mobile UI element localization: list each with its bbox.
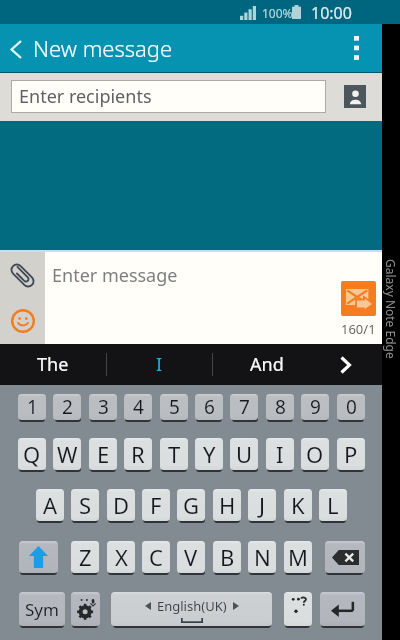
button[interactable]: T <box>160 438 188 470</box>
staticText: S <box>79 490 92 520</box>
button[interactable]: V <box>177 541 205 573</box>
staticText: Z <box>79 542 92 572</box>
staticText: G <box>183 490 200 520</box>
button[interactable]: G <box>177 489 205 521</box>
button[interactable]: 1 <box>18 394 46 420</box>
button[interactable]: Space <box>111 592 272 626</box>
button[interactable]: O <box>301 438 329 470</box>
button[interactable]: N <box>248 541 276 573</box>
button[interactable]: D <box>107 489 135 521</box>
staticText: I <box>156 352 163 377</box>
button[interactable]: E <box>89 438 117 470</box>
staticText: 160/1 <box>341 320 376 338</box>
button[interactable]: Add recipient from contacts <box>344 85 366 108</box>
staticText: P <box>344 439 358 469</box>
staticText: The <box>37 352 69 377</box>
staticText: E <box>97 439 110 469</box>
button[interactable]: K <box>284 489 312 521</box>
button[interactable]: 0 <box>337 394 365 420</box>
button[interactable]: 5 <box>160 394 188 420</box>
button[interactable]: And <box>213 344 321 385</box>
staticText: I <box>276 439 284 469</box>
staticText: Enter message <box>52 263 178 288</box>
button[interactable]: H <box>213 489 241 521</box>
button[interactable]: Keyboard settings <box>71 592 100 626</box>
button[interactable]: Navigate up <box>0 24 31 72</box>
button[interactable]: Sym <box>19 592 65 626</box>
button[interactable]: Enter <box>320 592 365 626</box>
button[interactable]: M <box>284 541 312 573</box>
button[interactable]: S <box>71 489 99 521</box>
button[interactable]: The <box>0 344 106 385</box>
button[interactable]: More suggestions <box>321 344 382 385</box>
staticText: Sym <box>25 598 59 621</box>
button[interactable]: Punctuation <box>284 592 312 626</box>
staticText: English(UK) <box>157 597 227 615</box>
staticText: And <box>250 352 284 377</box>
staticText: 2 <box>62 394 73 420</box>
button[interactable]: A <box>36 489 64 521</box>
button[interactable]: L <box>319 489 347 521</box>
button[interactable]: B <box>213 541 241 573</box>
staticText: L <box>327 490 339 520</box>
button[interactable]: Attach <box>0 252 45 298</box>
staticText: 9 <box>310 394 321 420</box>
button[interactable]: 9 <box>301 394 329 420</box>
button[interactable]: R <box>124 438 152 470</box>
button[interactable]: W <box>53 438 81 470</box>
staticText: X <box>115 542 128 572</box>
staticText: W <box>57 439 78 469</box>
staticText: R <box>131 439 145 469</box>
button[interactable]: Shift <box>19 541 58 573</box>
staticText: Q <box>23 439 41 469</box>
button[interactable]: Insert emoticon <box>0 298 45 344</box>
staticText: 5 <box>169 394 180 420</box>
button[interactable]: 3 <box>89 394 117 420</box>
staticText: U <box>236 439 253 469</box>
staticText: B <box>220 542 235 572</box>
button[interactable]: F <box>142 489 170 521</box>
staticText: 100% <box>262 5 293 21</box>
staticText: 6 <box>204 394 215 420</box>
staticText: 3 <box>98 394 109 420</box>
button[interactable]: More options <box>332 24 378 72</box>
staticText: 8 <box>275 394 286 420</box>
staticText: Y <box>203 439 216 469</box>
button[interactable]: Send <box>341 281 376 316</box>
button[interactable]: 7 <box>230 394 258 420</box>
staticText: T <box>168 439 181 469</box>
button[interactable]: I <box>107 344 212 385</box>
staticText: C <box>149 542 163 572</box>
button[interactable]: Z <box>71 541 99 573</box>
staticText: 0 <box>346 394 357 420</box>
button[interactable]: Delete <box>325 541 365 573</box>
staticText: M <box>288 542 308 572</box>
button[interactable]: 2 <box>53 394 81 420</box>
staticText: 7 <box>239 394 250 420</box>
button[interactable]: Enter recipients <box>11 80 326 113</box>
button[interactable]: J <box>248 489 276 521</box>
staticText: D <box>113 490 130 520</box>
button[interactable]: 4 <box>124 394 152 420</box>
staticText: 10:00 <box>311 2 352 24</box>
button[interactable]: 8 <box>266 394 294 420</box>
button[interactable]: Q <box>18 438 46 470</box>
staticText: A <box>43 490 58 520</box>
button[interactable]: C <box>142 541 170 573</box>
staticText: F <box>150 490 162 520</box>
staticText: K <box>291 490 305 520</box>
staticText: O <box>306 439 324 469</box>
staticText: Enter recipients <box>19 84 152 109</box>
staticText: N <box>254 542 271 572</box>
button[interactable]: I <box>266 438 294 470</box>
button[interactable]: 6 <box>195 394 223 420</box>
staticText: H <box>219 490 236 520</box>
button[interactable]: P <box>337 438 365 470</box>
staticText: J <box>259 490 266 520</box>
button[interactable]: X <box>107 541 135 573</box>
button[interactable]: Y <box>195 438 223 470</box>
staticText: 4 <box>133 394 144 420</box>
button[interactable]: U <box>230 438 258 470</box>
staticText: New message <box>33 33 173 63</box>
staticText: V <box>184 542 198 572</box>
